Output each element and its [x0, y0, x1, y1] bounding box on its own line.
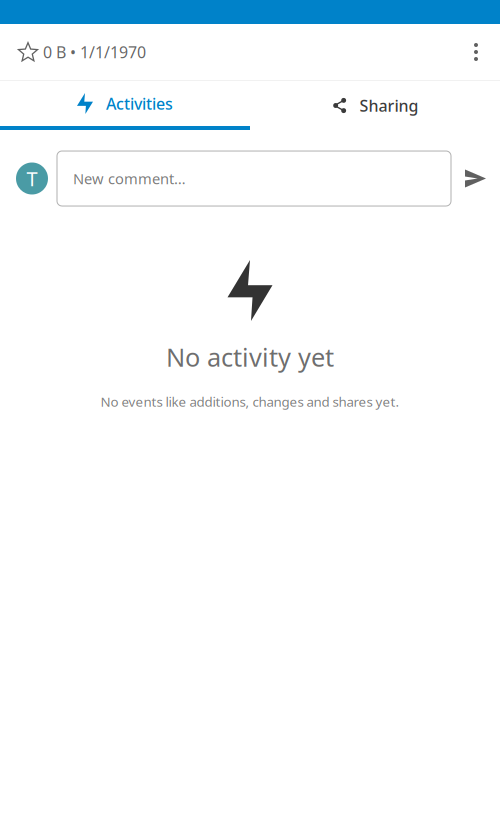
staticText: Sharing: [359, 95, 418, 116]
button[interactable]: Sharing: [250, 81, 500, 130]
staticText: No events like additions, changes and sh…: [100, 393, 399, 410]
button[interactable]: Send comment: [451, 156, 500, 200]
staticText: No activity yet: [166, 340, 334, 374]
button[interactable]: More options: [452, 24, 500, 80]
staticText: Activities: [106, 93, 173, 114]
staticText: 0 B • 1/1/1970: [43, 41, 146, 63]
staticText: T: [26, 165, 37, 192]
staticText: New comment…: [73, 169, 186, 188]
button[interactable]: 0 B • 1/1/1970: [0, 24, 154, 80]
button[interactable]: New comment…: [48, 151, 451, 206]
button[interactable]: Activities: [0, 81, 250, 130]
